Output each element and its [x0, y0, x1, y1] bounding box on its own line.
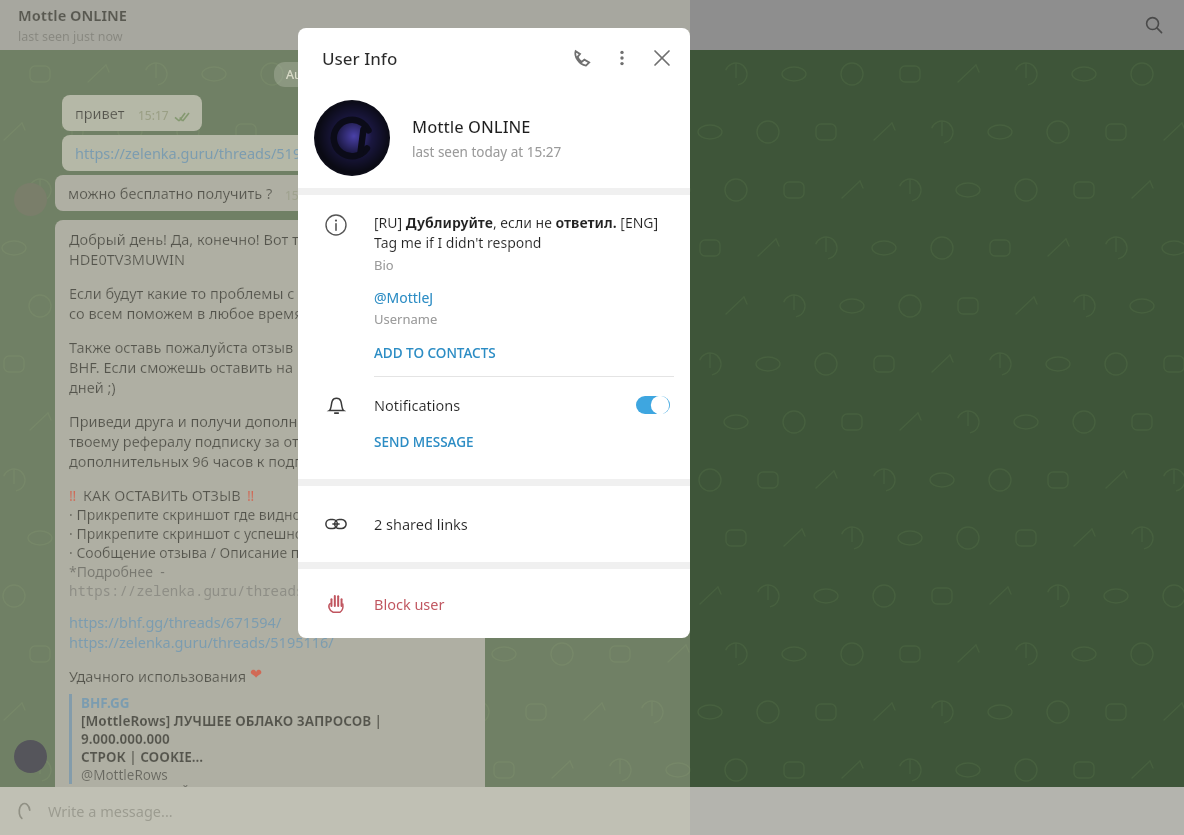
button[interactable]: ADD TO CONTACTS [374, 344, 674, 362]
staticText: Notifications [374, 395, 461, 415]
staticText: *Подробнее - [69, 562, 165, 581]
staticText: [RU] Дублируйте, если не ответил. [ENG] … [374, 213, 674, 252]
staticText: BHF. Если сможешь оставить на BHF, то + … [69, 357, 379, 377]
button[interactable]: Notifications [298, 377, 690, 433]
staticText: Удачного использования [69, 666, 250, 686]
staticText: · Прикрепите скриншот с успешной оплатой [69, 524, 372, 543]
staticText: Username [374, 310, 438, 328]
button[interactable]: SEND MESSAGE [374, 433, 690, 479]
button[interactable]: Notifications toggle [636, 395, 670, 415]
staticText: СТРОК | COOKIE... [81, 748, 204, 766]
staticText: https://zelenka.guru/threads/5195116/ [75, 143, 340, 163]
staticText: @MottleRows [81, 766, 168, 784]
staticText: Write a message... [48, 801, 173, 821]
staticText: КАК ОСТАВИТЬ ОТЗЫВ [83, 485, 241, 505]
button[interactable]: Attach [0, 787, 48, 835]
staticText: Добрый день! Да, конечно! Вот твой ключ: [69, 229, 369, 249]
staticText: BHF.GG [81, 694, 130, 712]
button[interactable]: Call [562, 38, 602, 78]
staticText: ADD TO CONTACTS [374, 344, 496, 362]
staticText: Mottle ONLINE [18, 5, 127, 25]
staticText: твоему рефералу подписку за отзыв + ещё [69, 431, 370, 451]
staticText: last seen today at 15:27 [412, 143, 562, 161]
button[interactable]: More options [602, 38, 642, 78]
button[interactable]: Close [642, 38, 682, 78]
staticText: https://zelenka.guru/threads/5195116/ [69, 632, 334, 652]
staticText: дней ;) [69, 377, 116, 397]
staticText: Если будут какие то проблемы с ботом, пи… [69, 283, 398, 303]
staticText: ❤️ [250, 666, 263, 683]
button[interactable]: Block user [298, 569, 690, 638]
staticText: Mottle ONLINE [412, 115, 531, 137]
staticText: August 8 [286, 66, 339, 83]
staticText: ‼️ [69, 485, 77, 505]
staticText: Bio [374, 256, 394, 274]
staticText: 15:17 [138, 107, 169, 123]
staticText: 2 shared links [374, 514, 468, 534]
staticText: last seen just now [18, 28, 123, 45]
staticText: 15:17 [285, 187, 316, 203]
staticText: Block user [374, 594, 445, 614]
button[interactable]: @MottleJ [374, 288, 438, 328]
staticText: [MottleRows] ЛУЧШЕЕ ОБЛАКО ЗАПРОСОВ | 9.… [81, 712, 471, 748]
staticText: со всем поможем в любое время. [69, 303, 307, 323]
staticText: дополнительных 96 часов к подписке [69, 451, 335, 471]
staticText: ЛУЧШЕ - НЕ НАЙТИ... [81, 784, 220, 802]
button[interactable]: 2 shared links [298, 486, 690, 562]
staticText: User Info [322, 47, 398, 70]
staticText: SEND MESSAGE [374, 433, 474, 451]
button[interactable]: Search [1130, 1, 1178, 49]
staticText: · Прикрепите скриншот где видно текст [69, 505, 340, 524]
staticText: можно бесплатно получить ? [68, 183, 273, 203]
staticText: Также оставь пожалуйста отзыв на zelenka… [69, 337, 400, 357]
staticText: ‼️ [247, 485, 255, 505]
staticText: HDE0TV3MUWIN [69, 249, 185, 269]
staticText: https://zelenka.guru/threads/4244 [69, 581, 347, 600]
staticText: Приведи друга и получи дополнительно, да… [69, 411, 398, 431]
staticText: привет [75, 103, 125, 123]
staticText: · Сообщение отзыва / Описание предмета [69, 543, 357, 562]
staticText: https://bhf.gg/threads/671594/ [69, 612, 282, 632]
staticText: @MottleJ [374, 288, 434, 307]
